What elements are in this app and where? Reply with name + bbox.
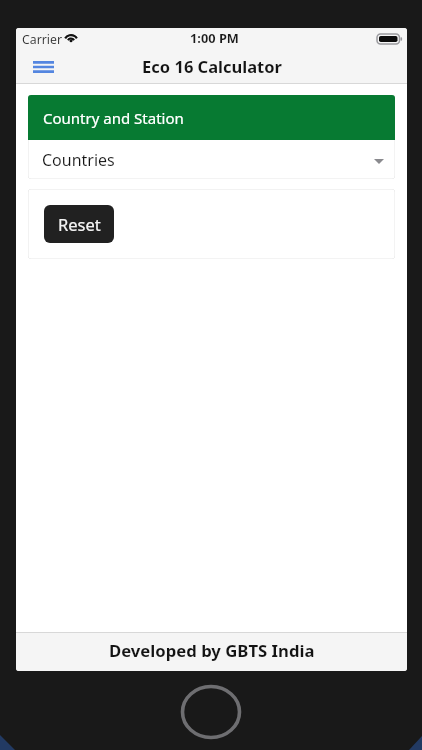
other: Battery full [377,34,402,44]
button[interactable]: Open navigation menu [22,50,62,83]
staticText: Eco 16 Calculator [142,55,282,77]
staticText: Carrier [22,31,63,48]
button[interactable]: Expand countries [370,151,388,169]
button[interactable]: Developed by GBTS India [16,633,407,671]
staticText: Reset [58,213,101,235]
staticText: 1:00 PM [190,29,239,46]
button[interactable]: Reset [44,205,114,243]
staticText: Country and Station [43,108,184,128]
staticText: Countries [42,149,115,171]
button[interactable]: Countries [28,140,395,179]
staticText: Developed by GBTS India [109,639,315,662]
other: Wi-Fi connected [64,31,78,42]
